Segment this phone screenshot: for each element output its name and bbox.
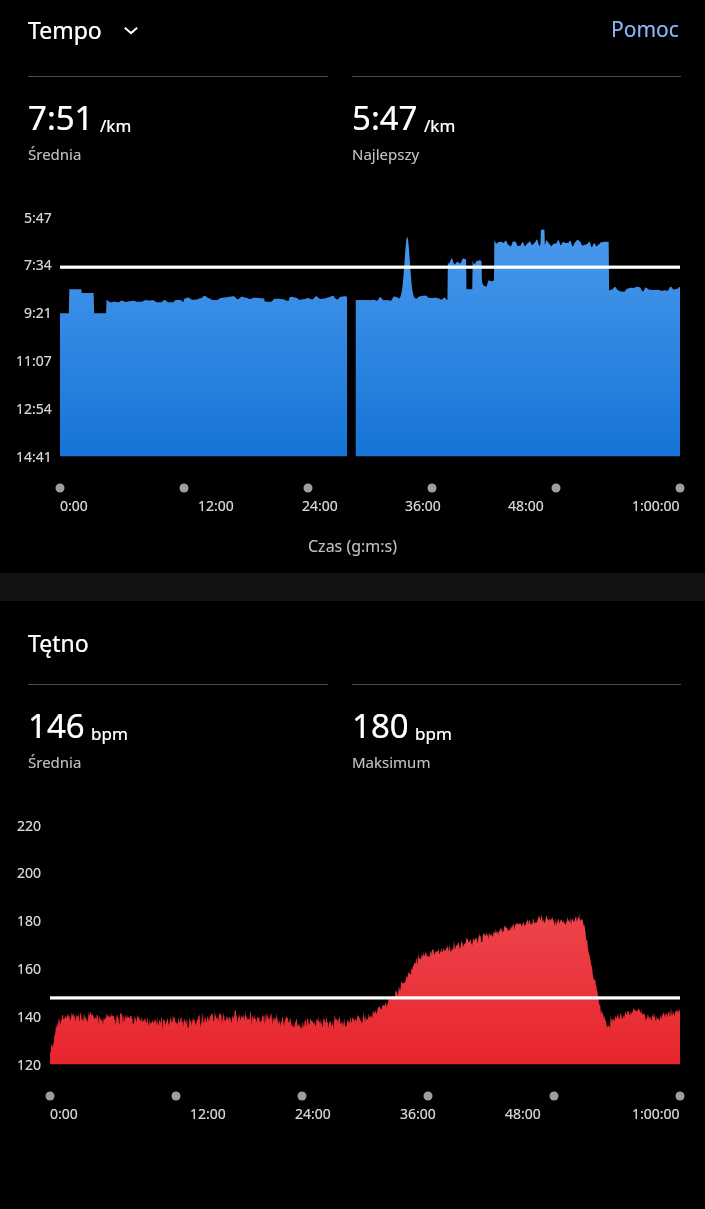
staticText: Tętno bbox=[28, 627, 89, 658]
staticText: Pomoc bbox=[611, 15, 679, 44]
staticText: 12:00 bbox=[198, 496, 234, 515]
staticText: 12:00 bbox=[190, 1104, 226, 1123]
staticText: Najlepszy bbox=[352, 144, 420, 164]
staticText: 5:47 bbox=[352, 95, 418, 140]
staticText: 36:00 bbox=[400, 1104, 436, 1123]
staticText: 24:00 bbox=[295, 1104, 331, 1123]
staticText: 180 bbox=[17, 911, 42, 930]
staticText: 0:00 bbox=[50, 1104, 78, 1123]
staticText: 0:00 bbox=[60, 496, 88, 515]
staticText: /km bbox=[424, 114, 456, 137]
staticText: 160 bbox=[17, 959, 42, 978]
staticText: 220 bbox=[17, 816, 42, 835]
button[interactable]: Pomoc bbox=[607, 9, 683, 50]
staticText: 200 bbox=[17, 863, 42, 882]
staticText: 12:54 bbox=[16, 399, 52, 418]
staticText: 180 bbox=[352, 703, 409, 748]
staticText: /km bbox=[100, 114, 132, 137]
staticText: 1:00:00 bbox=[632, 1104, 680, 1123]
staticText: Średnia bbox=[28, 144, 82, 164]
staticText: 120 bbox=[17, 1055, 42, 1074]
staticText: Maksimum bbox=[352, 752, 431, 772]
staticText: 24:00 bbox=[302, 496, 338, 515]
staticText: 1:00:00 bbox=[632, 496, 680, 515]
staticText: Średnia bbox=[28, 752, 82, 772]
staticText: 14:41 bbox=[16, 447, 52, 466]
staticText: Czas (g:m:s) bbox=[308, 535, 398, 557]
staticText: 140 bbox=[17, 1007, 42, 1026]
staticText: 36:00 bbox=[405, 496, 441, 515]
staticText: 7:51 bbox=[28, 95, 94, 140]
staticText: 48:00 bbox=[505, 1104, 541, 1123]
button[interactable]: Tempo bbox=[28, 14, 150, 45]
staticText: 5:47 bbox=[24, 208, 52, 227]
staticText: bpm bbox=[415, 722, 452, 745]
staticText: Tempo bbox=[28, 14, 102, 45]
other: Change metric bbox=[120, 19, 142, 41]
staticText: 11:07 bbox=[16, 351, 52, 370]
staticText: 48:00 bbox=[508, 496, 544, 515]
staticText: bpm bbox=[91, 722, 128, 745]
staticText: 146 bbox=[28, 703, 85, 748]
staticText: 9:21 bbox=[24, 303, 52, 322]
staticText: 7:34 bbox=[24, 255, 52, 274]
